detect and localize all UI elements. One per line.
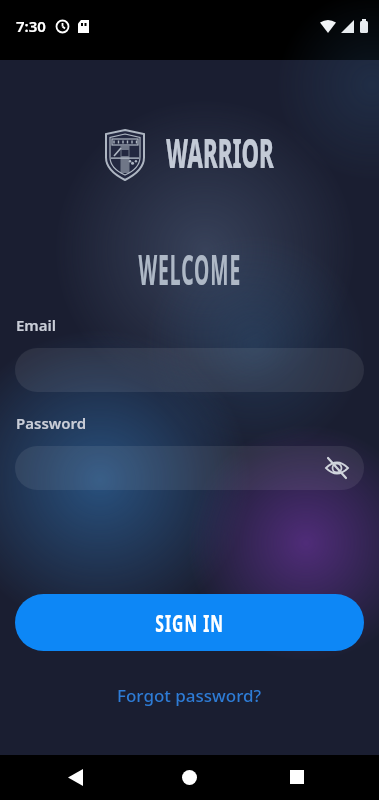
- button[interactable]: [15, 348, 364, 392]
- staticText: WELCOME: [138, 240, 241, 297]
- button[interactable]: [57, 759, 93, 795]
- button[interactable]: [15, 446, 364, 490]
- button[interactable]: Forgot password?: [117, 684, 262, 707]
- button[interactable]: [171, 759, 207, 795]
- staticText: Password: [16, 413, 87, 433]
- staticText: 7:30: [16, 16, 46, 36]
- button[interactable]: SIGN IN: [15, 594, 364, 651]
- button[interactable]: [279, 759, 315, 795]
- staticText: SIGN IN: [155, 607, 225, 638]
- staticText: Email: [16, 315, 57, 335]
- staticText: WARRIOR: [166, 124, 274, 180]
